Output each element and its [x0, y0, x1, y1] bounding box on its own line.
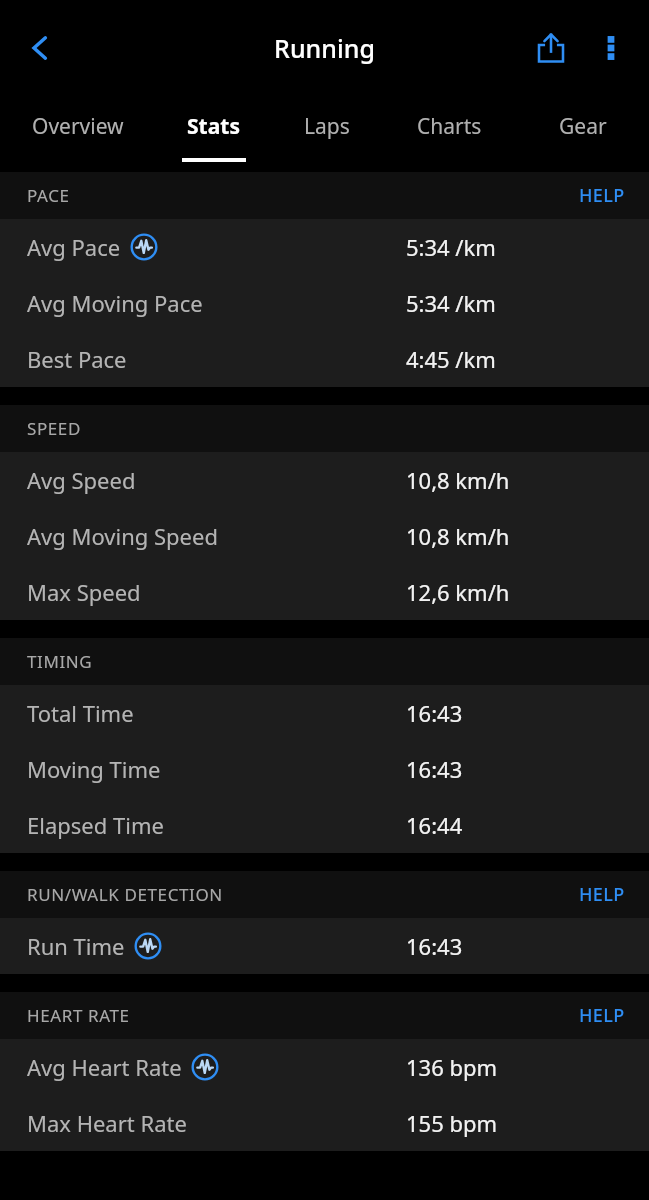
button[interactable]: Gear — [516, 96, 649, 172]
staticText: TIMING — [27, 650, 93, 673]
staticText: Gear — [559, 112, 607, 141]
button[interactable]: Avg Moving Pace — [0, 275, 649, 331]
button[interactable]: Best Pace — [0, 331, 649, 387]
staticText: 16:43 — [406, 931, 463, 961]
staticText: 16:44 — [406, 810, 463, 840]
button[interactable]: Back — [8, 16, 72, 80]
button[interactable]: More options — [581, 18, 641, 78]
staticText: 12,6 km/h — [406, 577, 510, 607]
staticText: PACE — [27, 184, 70, 207]
button[interactable]: Avg Pace — [0, 219, 649, 275]
staticText: Max Speed — [27, 577, 141, 607]
staticText: RUN/WALK DETECTION — [27, 883, 223, 906]
button[interactable]: Max Heart Rate — [0, 1095, 649, 1151]
button[interactable]: Elapsed Time — [0, 797, 649, 853]
button[interactable]: Laps — [271, 96, 383, 172]
button[interactable]: HELP — [555, 175, 649, 216]
staticText: HELP — [579, 882, 625, 907]
staticText: Elapsed Time — [27, 810, 164, 840]
staticText: Avg Speed — [27, 465, 136, 495]
button[interactable]: HELP — [555, 995, 649, 1036]
button[interactable]: Share — [521, 18, 581, 78]
button[interactable]: Stats — [156, 96, 271, 172]
staticText: Avg Moving Pace — [27, 288, 203, 318]
staticText: HELP — [579, 183, 625, 208]
staticText: Total Time — [27, 698, 134, 728]
staticText: 155 bpm — [406, 1108, 498, 1138]
button[interactable]: Overview — [0, 96, 156, 172]
button[interactable]: Run Time — [0, 918, 649, 974]
staticText: Stats — [187, 112, 240, 141]
staticText: Laps — [304, 112, 350, 141]
staticText: Moving Time — [27, 754, 161, 784]
staticText: Running — [274, 31, 375, 65]
staticText: HEART RATE — [27, 1004, 130, 1027]
staticText: 136 bpm — [406, 1052, 498, 1082]
button[interactable]: Avg Moving Speed — [0, 508, 649, 564]
button[interactable]: Avg Speed — [0, 452, 649, 508]
button[interactable]: Total Time — [0, 685, 649, 741]
staticText: Avg Moving Speed — [27, 521, 218, 551]
staticText: Avg Heart Rate — [27, 1052, 182, 1082]
staticText: 10,8 km/h — [406, 465, 510, 495]
staticText: 5:34 /km — [406, 232, 496, 262]
staticText: 4:45 /km — [406, 344, 496, 374]
staticText: SPEED — [27, 417, 81, 440]
button[interactable]: Moving Time — [0, 741, 649, 797]
staticText: Overview — [32, 112, 124, 141]
staticText: Avg Pace — [27, 232, 121, 262]
staticText: Charts — [417, 112, 482, 141]
button[interactable]: HELP — [555, 874, 649, 915]
button[interactable]: Max Speed — [0, 564, 649, 620]
staticText: Best Pace — [27, 344, 127, 374]
button[interactable]: Charts — [383, 96, 516, 172]
staticText: Run Time — [27, 931, 125, 961]
staticText: 16:43 — [406, 754, 463, 784]
staticText: 5:34 /km — [406, 288, 496, 318]
button[interactable]: Avg Heart Rate — [0, 1039, 649, 1095]
staticText: Max Heart Rate — [27, 1108, 187, 1138]
staticText: 16:43 — [406, 698, 463, 728]
staticText: HELP — [579, 1003, 625, 1028]
staticText: 10,8 km/h — [406, 521, 510, 551]
